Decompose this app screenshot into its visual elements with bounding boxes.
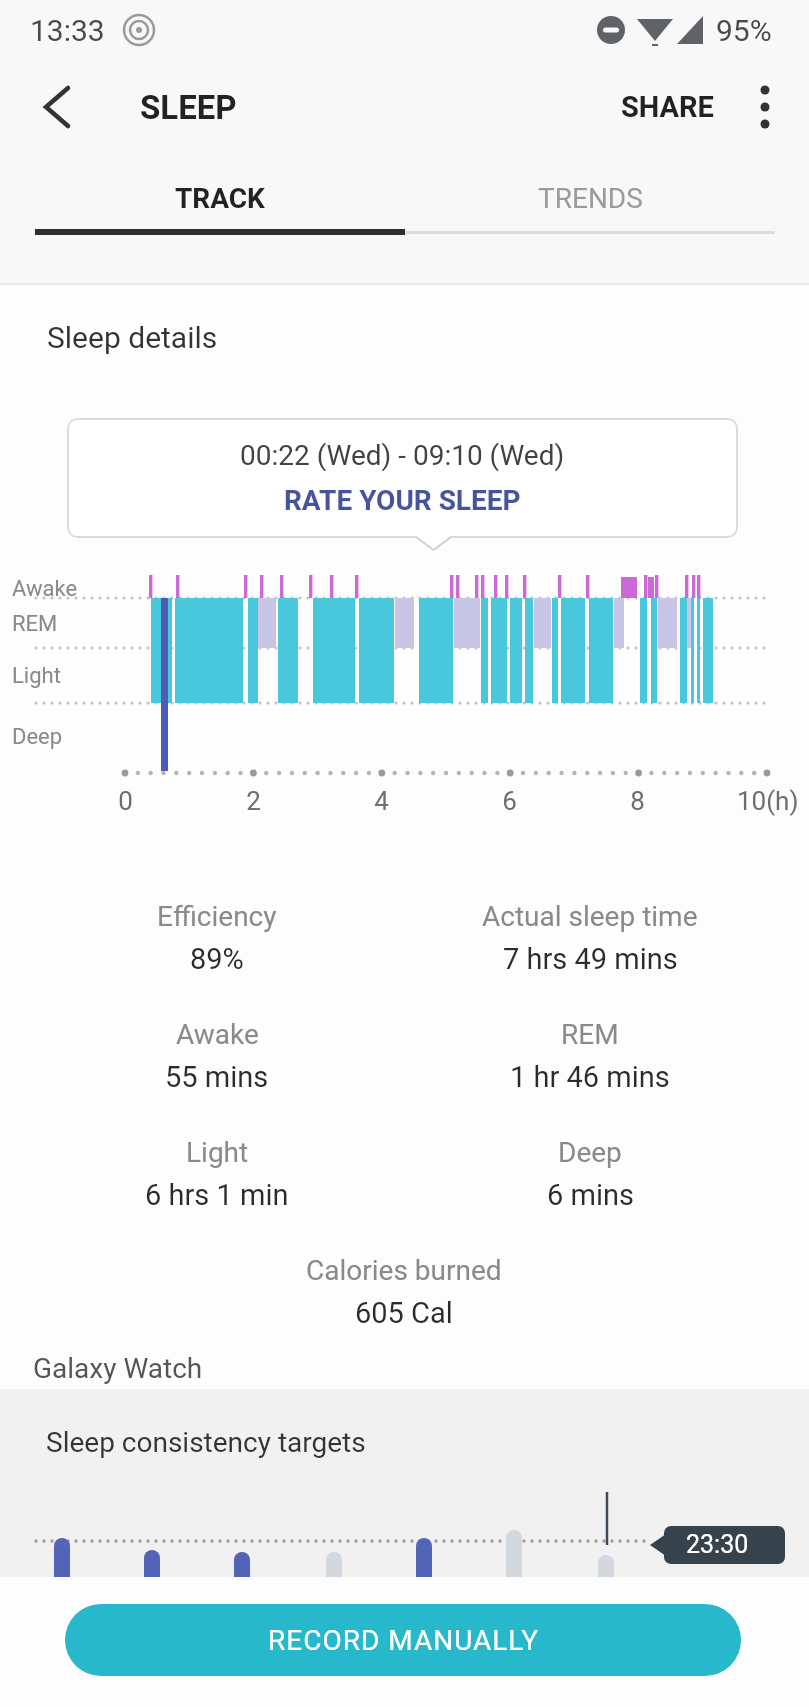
staticText: Awake	[12, 576, 78, 602]
staticText: TRACK	[175, 182, 265, 215]
staticText: 89%	[190, 942, 244, 976]
staticText: 95%	[716, 13, 772, 48]
staticText: 0	[118, 786, 133, 816]
button[interactable]: TRACK	[35, 160, 405, 236]
button[interactable]: 00:22 (Wed) - 09:10 (Wed)	[67, 418, 738, 538]
staticText: 6	[502, 786, 517, 816]
button[interactable]: TRENDS	[405, 160, 775, 236]
staticText: Light	[186, 1136, 249, 1169]
staticText: Actual sleep time	[482, 900, 698, 933]
staticText: 6 hrs 1 min	[145, 1178, 289, 1212]
staticText: 605 Cal	[355, 1296, 453, 1330]
staticText: 1 hr 46 mins	[510, 1060, 670, 1094]
staticText: Sleep details	[47, 320, 218, 355]
staticText: 6 mins	[547, 1178, 634, 1212]
staticText: 7 hrs 49 mins	[503, 942, 678, 976]
staticText: Efficiency	[157, 900, 277, 933]
staticText: Deep	[558, 1136, 622, 1169]
staticText: Awake	[176, 1018, 259, 1051]
staticText: 4	[374, 786, 389, 816]
staticText: Calories burned	[306, 1254, 502, 1287]
staticText: 8	[630, 786, 645, 816]
staticText: RATE YOUR SLEEP	[284, 484, 521, 517]
staticText: SLEEP	[140, 88, 237, 127]
button[interactable]	[742, 82, 788, 134]
staticText: RECORD MANUALLY	[268, 1624, 539, 1657]
button[interactable]	[22, 82, 78, 134]
staticText: 13:33	[30, 13, 105, 48]
staticText: Galaxy Watch	[33, 1352, 203, 1385]
staticText: 55 mins	[165, 1060, 269, 1094]
staticText: TRENDS	[538, 182, 643, 215]
staticText: 23:30	[686, 1530, 749, 1559]
staticText: SHARE	[621, 90, 714, 124]
button[interactable]: SHARE	[605, 84, 729, 130]
staticText: Light	[12, 663, 61, 689]
staticText: Sleep consistency targets	[46, 1426, 366, 1459]
staticText: REM	[12, 611, 58, 637]
staticText: 00:22 (Wed) - 09:10 (Wed)	[240, 439, 565, 472]
staticText: Deep	[12, 724, 63, 750]
staticText: 10(h)	[737, 786, 799, 816]
staticText: REM	[561, 1018, 619, 1051]
staticText: 2	[246, 786, 261, 816]
button[interactable]: RECORD MANUALLY	[65, 1604, 741, 1676]
